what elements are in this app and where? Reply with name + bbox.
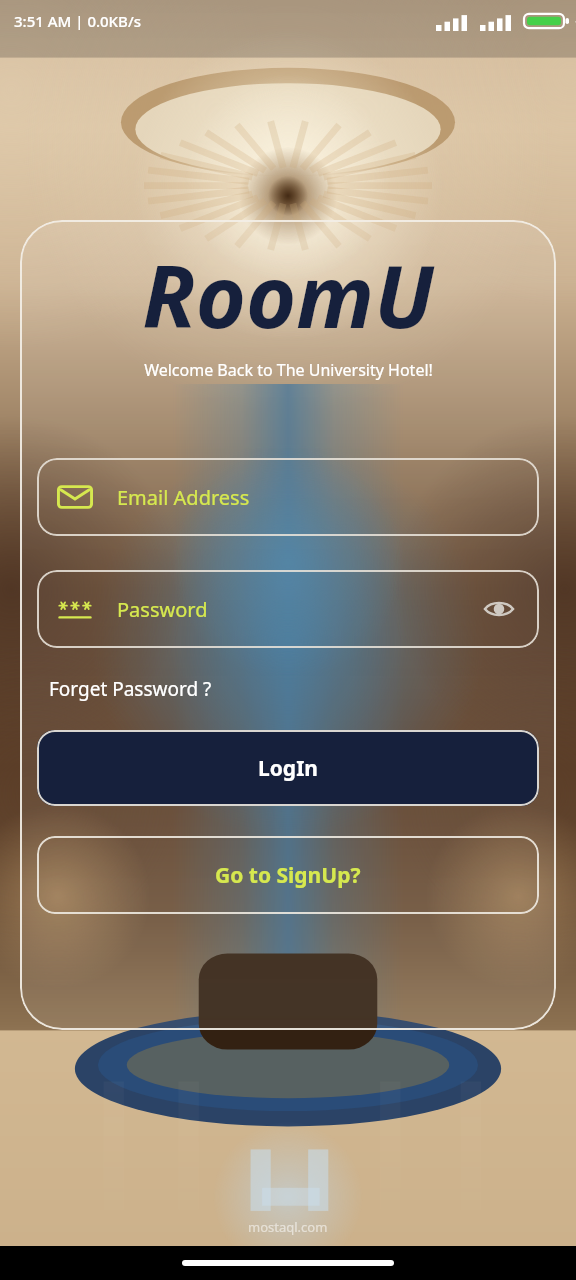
staticText: Forget Password ?	[49, 676, 212, 702]
staticText: Password	[117, 596, 208, 623]
staticText: Go to SignUp?	[215, 861, 361, 890]
button[interactable]: Email Address	[37, 458, 539, 536]
staticText: LogIn	[258, 754, 318, 783]
button[interactable]: Password	[37, 570, 539, 648]
button[interactable]: Forget Password ?	[37, 670, 539, 708]
button[interactable]: Show password	[479, 589, 519, 629]
staticText: RoomU	[142, 236, 434, 353]
staticText: Email Address	[117, 484, 250, 511]
button[interactable]: LogIn	[37, 730, 539, 806]
staticText: 3:51 AM | 0.0KB/s	[14, 11, 141, 31]
button[interactable]: Go to SignUp?	[37, 836, 539, 914]
staticText: mostaql.com	[248, 1218, 328, 1236]
staticText: Welcome Back to The University Hotel!	[144, 359, 433, 381]
